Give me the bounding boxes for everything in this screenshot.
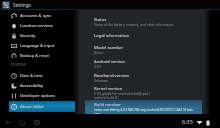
staticText: Model number	[94, 45, 124, 51]
staticText: Accounts & sync	[20, 13, 52, 19]
button[interactable]: About tablet	[9, 101, 75, 112]
button[interactable]: Status	[85, 15, 202, 29]
staticText: 4.0.3	[94, 65, 102, 69]
button[interactable]: Security	[9, 30, 75, 41]
staticText: 6:35	[182, 118, 193, 125]
button[interactable]: Baseband version	[85, 71, 202, 85]
staticText: Backup & reset	[20, 53, 49, 59]
staticText: Legal information	[94, 33, 129, 39]
staticText: exam-userdebug 4.0.3 IML74K eng.android.…	[94, 108, 194, 116]
button[interactable]: Location services	[9, 20, 75, 31]
staticText: Status of the battery, network, and othe…	[94, 23, 174, 27]
button[interactable]: Language & input	[9, 40, 75, 51]
staticText: Nexus	[94, 51, 104, 55]
staticText: Accessibility	[20, 83, 44, 89]
staticText: Date & time	[20, 73, 43, 79]
staticText: About tablet	[20, 104, 44, 110]
button[interactable]: Recent apps	[31, 117, 42, 128]
button[interactable]: Accessibility	[9, 80, 75, 91]
button[interactable]: Accounts & sync	[9, 10, 75, 21]
staticText: Language & input	[20, 43, 55, 49]
staticText: 3.0.8-g8a4b1de android-build@vpbs1 andro…	[94, 92, 150, 100]
staticText: Build number	[94, 102, 121, 108]
staticText: Settings	[13, 2, 31, 8]
staticText: Security	[20, 33, 36, 39]
button[interactable]: Build number	[85, 100, 202, 118]
button[interactable]: Home	[17, 117, 28, 128]
button[interactable]: Android version	[85, 57, 202, 71]
button[interactable]: Model number	[85, 43, 202, 57]
button[interactable]: Kernel version	[85, 84, 202, 102]
button[interactable]: Date & time	[9, 70, 75, 81]
staticText: Status	[94, 17, 107, 23]
staticText: Kernel version	[94, 86, 123, 92]
button[interactable]: Legal information	[85, 31, 202, 41]
staticText: Android version	[94, 59, 126, 65]
staticText: SYSTEM	[11, 62, 26, 67]
staticText: Baseband version	[94, 73, 130, 79]
button[interactable]: Backup & reset	[9, 50, 75, 61]
staticText: Developer options	[20, 93, 56, 99]
staticText: Unknown	[94, 79, 109, 83]
staticText: Location services	[20, 23, 53, 29]
button[interactable]: Developer options	[9, 90, 75, 101]
button[interactable]: Back	[3, 117, 14, 128]
